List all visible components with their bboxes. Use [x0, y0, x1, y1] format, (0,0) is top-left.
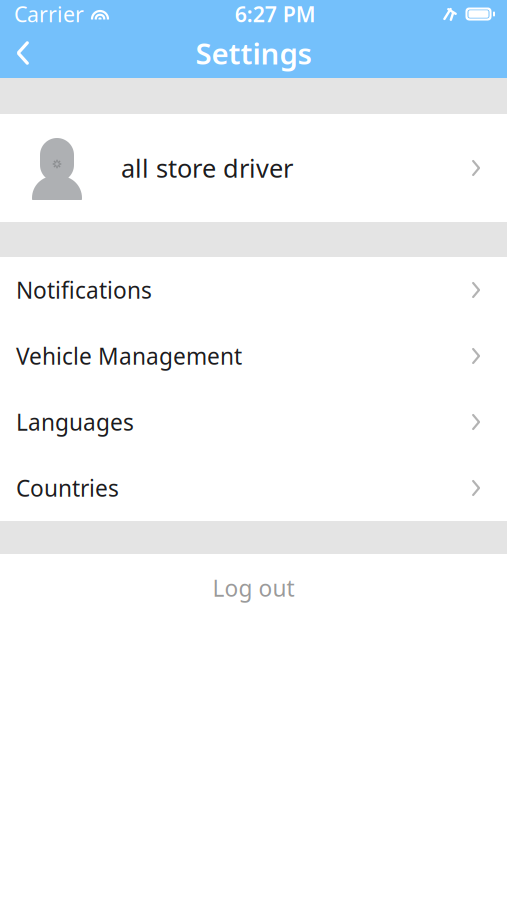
button[interactable]: all store driver — [0, 114, 507, 222]
staticText: Settings — [195, 33, 311, 72]
button[interactable]: Vehicle Management — [0, 323, 507, 389]
staticText: Carrier — [14, 0, 84, 28]
staticText: 6:27 PM — [235, 0, 316, 28]
staticText: Notifications — [16, 275, 152, 305]
staticText: Languages — [16, 407, 134, 437]
button[interactable]: Notifications — [0, 257, 507, 323]
button[interactable]: Languages — [0, 389, 507, 455]
staticText: Vehicle Management — [16, 341, 242, 371]
staticText: all store driver — [121, 151, 293, 185]
staticText: Countries — [16, 473, 119, 503]
staticText: Log out — [212, 573, 294, 603]
button[interactable]: Log out — [0, 554, 507, 622]
button[interactable]: Countries — [0, 455, 507, 521]
button[interactable]: Back — [0, 28, 46, 78]
